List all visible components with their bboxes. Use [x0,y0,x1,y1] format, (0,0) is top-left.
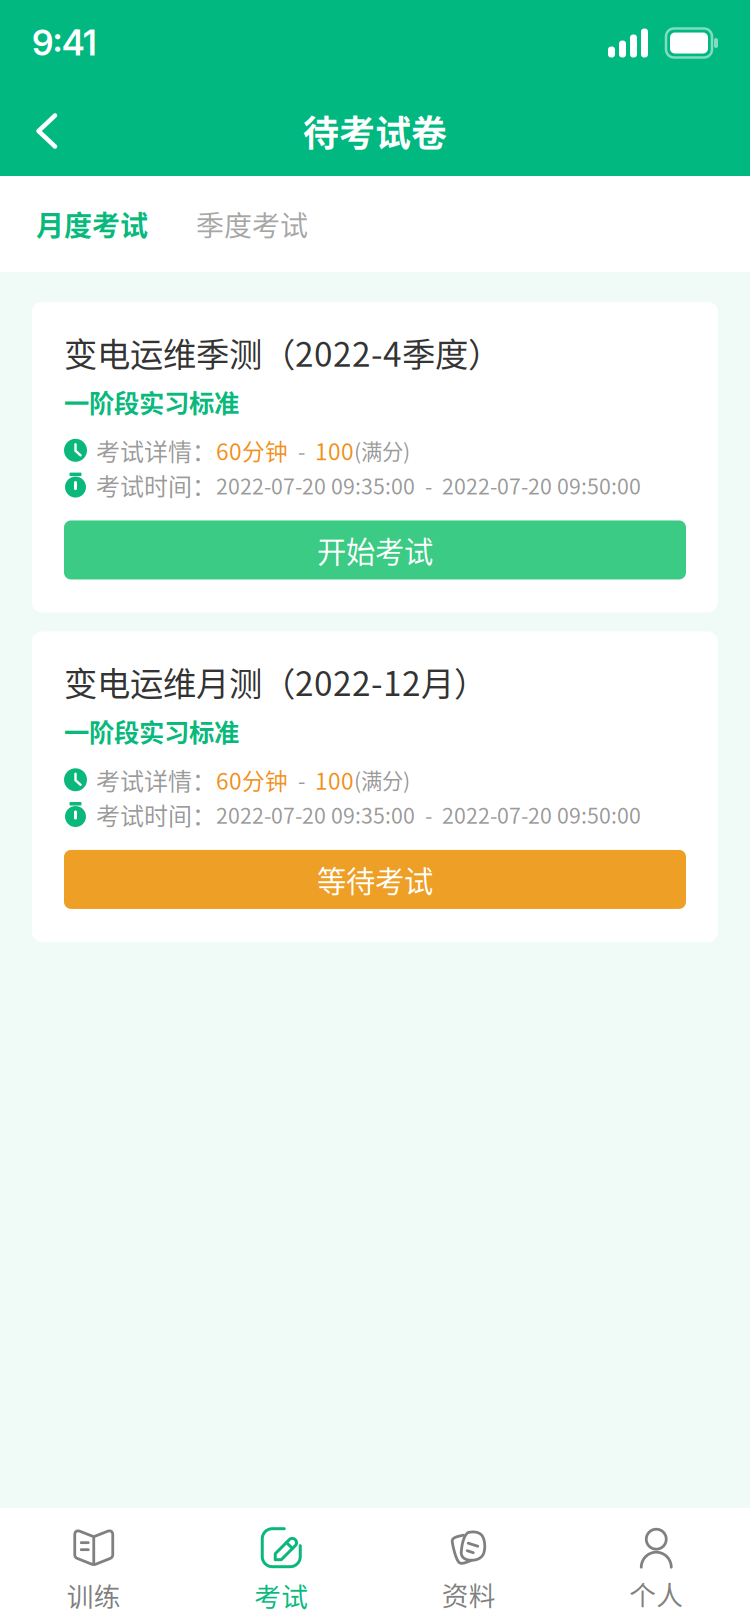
staticText: 一阶段实习标准 [64,713,239,749]
staticText: 60分钟 [216,434,288,467]
button[interactable]: 训练 [0,1504,187,1624]
staticText: 资料 [442,1575,496,1613]
button[interactable]: 变电运维季测（2022-4季度） [32,302,718,612]
button[interactable]: 等待考试 [64,850,686,909]
button[interactable]: 资料 [375,1504,562,1624]
staticText: 考试时间： [96,468,216,502]
staticText: (满分) [354,764,410,795]
button[interactable]: 月度考试 [36,184,172,264]
staticText: 待考试卷 [303,105,447,157]
staticText: 月度考试 [36,204,148,244]
staticText: 变电运维季测（2022-4季度） [64,328,501,376]
button[interactable]: Back [0,86,82,176]
staticText: 100 [315,434,354,467]
staticText: 2022-07-20 09:35:00 [216,799,415,830]
staticText: - [288,435,315,466]
staticText: (满分) [354,435,410,466]
staticText: 个人 [629,1574,683,1613]
staticText: 2022-07-20 09:50:00 [442,799,641,830]
staticText: - [415,799,442,830]
staticText: 季度考试 [196,204,308,244]
button[interactable]: 季度考试 [172,184,332,264]
staticText: 训练 [67,1576,121,1614]
staticText: 9:41 [32,22,97,64]
button[interactable]: 个人 [562,1504,750,1624]
button[interactable]: 开始考试 [64,520,686,579]
staticText: 变电运维月测（2022-12月） [64,657,487,706]
staticText: 等待考试 [317,858,433,901]
staticText: 考试详情： [96,433,216,468]
staticText: 考试时间： [96,797,216,832]
staticText: 开始考试 [317,529,433,571]
staticText: 2022-07-20 09:50:00 [442,470,641,500]
staticText: 100 [315,763,354,796]
staticText: 考试详情： [96,762,216,797]
staticText: 2022-07-20 09:35:00 [216,470,415,500]
staticText: - [288,764,315,795]
button[interactable]: 考试 [187,1504,375,1624]
staticText: 60分钟 [216,763,288,796]
staticText: - [415,470,442,500]
button[interactable]: 变电运维月测（2022-12月） [32,631,718,942]
staticText: 一阶段实习标准 [64,383,239,420]
staticText: 考试 [254,1576,308,1614]
